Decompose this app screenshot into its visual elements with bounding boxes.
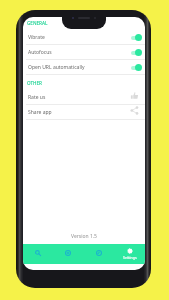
staticText: Settings: [123, 255, 137, 260]
button[interactable]: Open URL automatically: [23, 60, 145, 75]
button[interactable]: Vibrate: [23, 30, 145, 45]
button[interactable]: Autofocus: [23, 45, 145, 60]
button[interactable]: Search: [23, 244, 53, 264]
button[interactable]: History: [83, 244, 114, 264]
staticText: Share app: [28, 109, 131, 116]
staticText: Rate us: [28, 94, 131, 101]
staticText: OTHER: [27, 80, 42, 86]
button[interactable]: Settings: [114, 244, 145, 264]
staticText: GENERAL: [27, 20, 48, 26]
button[interactable]: Add: [53, 244, 83, 264]
staticText: Open URL automatically: [28, 64, 130, 71]
button[interactable]: Rate us: [23, 90, 145, 105]
button[interactable]: Share app: [23, 105, 145, 120]
staticText: Autofocus: [28, 49, 130, 56]
staticText: Version 1.5: [23, 233, 145, 240]
staticText: Vibrate: [28, 34, 130, 41]
